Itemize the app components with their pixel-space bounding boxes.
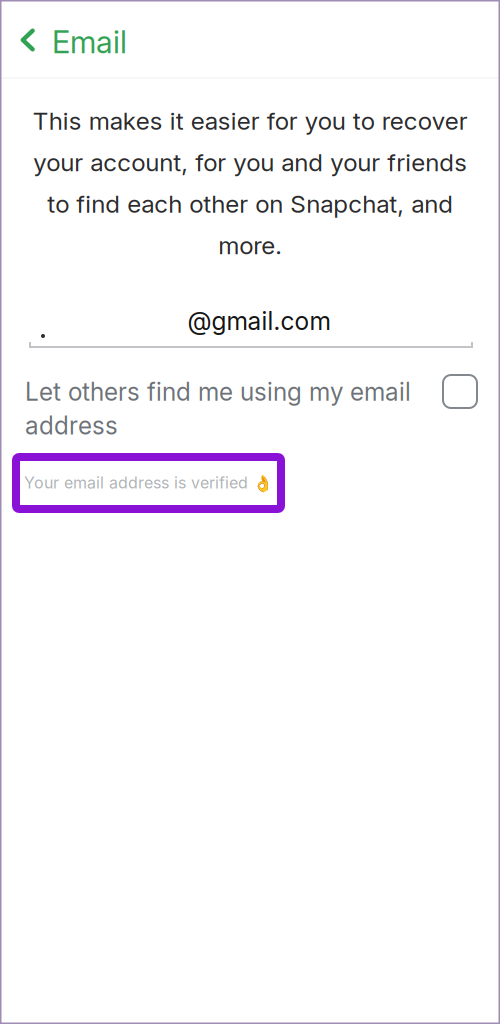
staticText: Let others find me using my email addres…: [25, 377, 411, 440]
staticText: @gmail.com: [187, 306, 330, 336]
button[interactable]: Email address: [29, 306, 473, 356]
button[interactable]: Email: [0, 12, 141, 68]
staticText: Email: [52, 23, 127, 60]
staticText: This makes it easier for you to recover …: [32, 106, 467, 260]
button[interactable]: Let others find me using my email addres…: [25, 377, 477, 440]
staticText: Your email address is verified 👌: [24, 473, 273, 492]
